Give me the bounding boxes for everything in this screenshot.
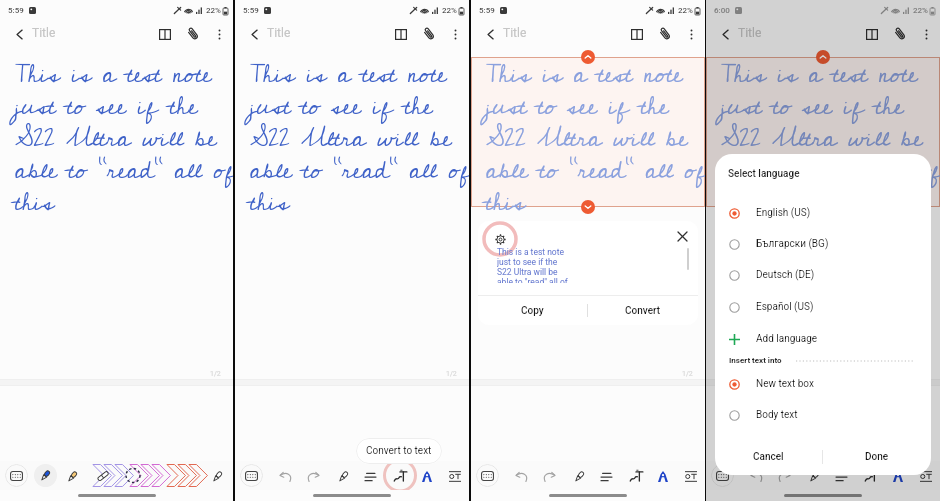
button[interactable]: Redo [302,465,324,487]
staticText: This is a test note [15,51,212,98]
button[interactable]: Align [595,465,617,487]
button[interactable]: Settings [491,230,509,248]
button[interactable]: Undo [275,465,297,487]
button[interactable]: Español (US) [715,294,931,320]
staticText: just to see if the [497,257,558,267]
button[interactable]: Text box [680,465,702,487]
staticText: Title [503,26,527,40]
button[interactable]: Highlighter [61,465,83,487]
staticText: Español (US) [756,301,814,313]
staticText: Български (BG) [756,238,829,250]
staticText: 6:00 [714,6,730,15]
staticText: This is a test note [486,51,683,98]
staticText: S22 Ultra will be [497,267,558,277]
button[interactable]: Pen [332,465,354,487]
staticText: This is a test note [250,51,447,98]
button[interactable]: Back [480,24,500,44]
button[interactable]: Top selection handle [581,50,595,64]
button[interactable]: Close [673,227,691,245]
button[interactable]: Reading mode [389,22,413,46]
staticText: Body text [756,409,798,421]
button[interactable]: Text style [887,465,909,487]
button[interactable]: More options [915,23,937,45]
staticText: Deutsch (DE) [756,269,815,281]
staticText: able to "read" all of [250,147,469,194]
button[interactable]: Reading mode [153,22,177,46]
button[interactable]: Convert to text [356,438,442,464]
button[interactable]: Convert [588,296,698,325]
button[interactable]: Reading mode [625,22,649,46]
button[interactable]: Keyboard [5,464,28,487]
staticText: S22 Ultra will be [486,115,688,162]
button[interactable]: Body text [715,402,931,428]
button[interactable]: Copy [478,296,587,325]
button[interactable]: Text style [416,465,438,487]
button[interactable]: Reading mode [860,22,884,46]
button[interactable]: Text box [444,465,466,487]
button[interactable]: Attach [181,22,205,46]
staticText: this [721,179,761,226]
staticText: Cancel [753,451,784,463]
button[interactable]: Back [9,24,29,44]
staticText: 22% [442,6,457,15]
button[interactable]: Attach [888,22,912,46]
button[interactable]: Text style [652,465,674,487]
staticText: this [486,179,526,226]
staticText: 22% [678,6,693,15]
button[interactable]: More options [208,23,230,45]
staticText: Insert text into [729,356,782,365]
button[interactable]: Deutsch (DE) [715,262,931,288]
button[interactable]: Back [715,24,735,44]
staticText: English (US) [756,207,811,219]
button[interactable]: More options [444,23,466,45]
staticText: this [15,179,55,226]
staticText: 22% [206,6,221,15]
button[interactable]: Align [359,465,381,487]
button[interactable]: Text box [915,465,937,487]
button[interactable]: More options [680,23,702,45]
staticText: just to see if the [250,83,433,130]
staticText: Copy [521,305,544,317]
staticText: Add language [756,333,818,345]
button[interactable]: New text box [715,371,931,397]
button[interactable]: English (US) [715,200,931,226]
staticText: this [250,179,290,226]
button[interactable]: Undo [511,465,533,487]
staticText: Title [32,26,56,40]
staticText: 5:59 [243,6,259,15]
button[interactable]: Български (BG) [715,231,931,257]
button[interactable]: Pen [568,465,590,487]
button[interactable]: Keyboard [240,464,263,487]
button[interactable]: Eraser [92,465,114,487]
button[interactable]: Convert to text [625,465,647,487]
button[interactable]: Pen [34,464,57,487]
button[interactable]: Pen settings [206,465,228,487]
staticText: 1/2 [210,370,221,378]
button[interactable]: Attach [653,22,677,46]
button[interactable]: Align [830,465,852,487]
staticText: 22% [913,6,928,15]
staticText: This is a test note [721,51,918,98]
button[interactable]: Add language [715,326,931,352]
button[interactable]: Bottom selection handle [581,200,595,214]
button[interactable]: Redo [538,465,560,487]
button[interactable]: Attach [417,22,441,46]
button[interactable]: Pen [803,465,825,487]
button[interactable]: Undo [746,465,768,487]
button[interactable]: Redo [773,465,795,487]
button[interactable]: Convert to text [860,465,882,487]
staticText: 5:59 [8,6,24,15]
button[interactable]: Back [244,24,264,44]
staticText: Title [267,26,291,40]
button[interactable]: Keyboard [711,464,734,487]
button[interactable]: Cancel [715,442,822,472]
staticText: S22 Ultra will be [15,115,217,162]
staticText: This is a test note [497,247,565,257]
staticText: just to see if the [721,83,904,130]
button[interactable]: Keyboard [476,464,499,487]
button[interactable]: Done [823,442,931,472]
staticText: Convert to text [366,445,432,457]
button[interactable]: Convert to text [389,465,411,487]
staticText: 1/2 [682,370,693,378]
